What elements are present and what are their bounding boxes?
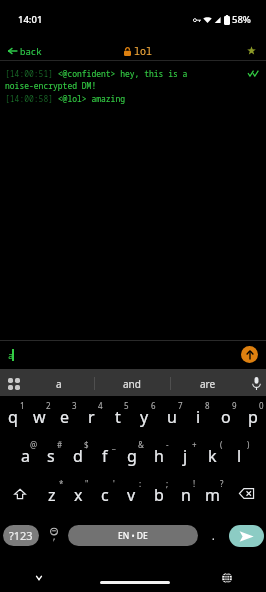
staticText: y [140, 406, 149, 428]
button[interactable]: j [172, 435, 199, 474]
staticText: 1 [20, 400, 25, 411]
staticText: l [237, 445, 242, 467]
staticText: back [20, 45, 42, 57]
button[interactable]: u [158, 396, 185, 435]
staticText: 58% [232, 13, 251, 26]
staticText: . [212, 529, 215, 543]
button[interactable]: z [39, 474, 65, 513]
button[interactable]: y [131, 396, 158, 435]
button[interactable]: p [239, 396, 266, 435]
staticText: ) [247, 439, 250, 450]
staticText: 6 [151, 400, 156, 411]
button[interactable]: back [0, 45, 50, 57]
button[interactable]: lol [120, 44, 156, 58]
button[interactable]: d [64, 435, 91, 474]
staticText: 5 [124, 400, 129, 411]
button[interactable]: Hide keyboard [29, 568, 49, 588]
staticText: c [101, 484, 109, 506]
button[interactable]: f [91, 435, 118, 474]
button[interactable]: k [199, 435, 226, 474]
staticText: + [192, 439, 197, 450]
button[interactable]: s [38, 435, 64, 474]
staticText: $ [84, 439, 89, 450]
staticText: 4 [98, 400, 103, 411]
button[interactable]: Shift [0, 474, 39, 513]
staticText: ' [113, 478, 115, 489]
staticText: 14:01 [18, 13, 43, 26]
button[interactable]: i [185, 396, 212, 435]
staticText: ! [193, 478, 196, 489]
staticText: g [127, 445, 137, 467]
button[interactable]: Change language [217, 568, 237, 588]
button[interactable]: are [170, 369, 245, 398]
button[interactable]: Voice input [246, 369, 266, 398]
button[interactable]: a [24, 369, 94, 398]
staticText: r [88, 406, 95, 428]
button[interactable]: n [172, 474, 199, 513]
button[interactable]: t [104, 396, 131, 435]
staticText: h [154, 445, 164, 467]
button[interactable]: q [0, 396, 26, 435]
button[interactable]: g [118, 435, 145, 474]
staticText: x [74, 484, 83, 506]
staticText: 8 [205, 400, 210, 411]
staticText: 9 [232, 400, 237, 411]
button[interactable]: h [145, 435, 172, 474]
staticText: ( [220, 439, 223, 450]
button[interactable]: l [226, 435, 253, 474]
staticText: are [200, 377, 216, 391]
staticText: * [59, 478, 64, 489]
staticText: z [48, 484, 56, 506]
staticText: 0 [259, 400, 264, 411]
staticText: v [127, 484, 136, 506]
staticText: lol [134, 44, 152, 58]
button[interactable]: x [65, 474, 91, 513]
staticText: ? [220, 478, 224, 489]
button[interactable]: r [78, 396, 104, 435]
button[interactable]: Backspace [226, 474, 266, 513]
staticText: & [138, 439, 144, 450]
staticText: f [102, 445, 108, 467]
staticText: a [8, 349, 14, 361]
button[interactable]: c [91, 474, 118, 513]
button[interactable]: Favourite [240, 42, 266, 59]
staticText: 3 [72, 400, 77, 411]
button[interactable]: e [52, 396, 78, 435]
staticText: o [221, 406, 231, 428]
button[interactable]: Toolbar [2, 372, 26, 396]
button[interactable]: EN • DE [68, 525, 198, 546]
button[interactable]: w [26, 396, 52, 435]
button[interactable]: o [212, 396, 239, 435]
staticText: _ [112, 439, 116, 450]
button[interactable]: and [94, 369, 170, 398]
staticText: 2 [46, 400, 51, 411]
button[interactable]: m [199, 474, 226, 513]
staticText: j [183, 445, 188, 467]
staticText: and [123, 377, 141, 391]
staticText: i [196, 406, 201, 428]
button[interactable]: Send [229, 525, 264, 547]
staticText: d [73, 445, 83, 467]
button[interactable]: v [118, 474, 145, 513]
staticText: a [56, 377, 62, 391]
staticText: b [154, 484, 164, 506]
staticText: ?123 [9, 528, 33, 543]
staticText: EN • DE [118, 530, 148, 542]
staticText: k [208, 445, 217, 467]
staticText: @ [30, 439, 38, 450]
staticText: # [57, 439, 63, 450]
button[interactable]: a [12, 435, 38, 474]
staticText: q [8, 406, 18, 428]
staticText: : [139, 478, 142, 489]
button[interactable]: . [205, 528, 221, 544]
staticText: e [60, 406, 70, 428]
staticText: [14:00:51] <@confident> hey, this is a n… [5, 68, 188, 105]
staticText: t [115, 406, 121, 428]
button[interactable]: Emoji [44, 526, 64, 546]
button[interactable]: Send message [241, 346, 258, 363]
button[interactable]: ?123 [3, 525, 39, 546]
staticText: a [21, 445, 30, 467]
button[interactable]: b [145, 474, 172, 513]
staticText: n [181, 484, 191, 506]
staticText: p [248, 406, 258, 428]
